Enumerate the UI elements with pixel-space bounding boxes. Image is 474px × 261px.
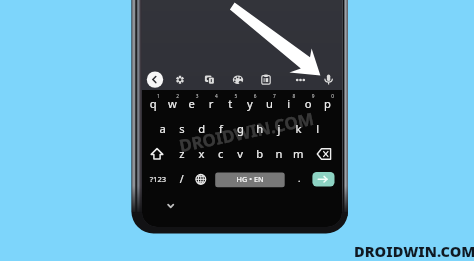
button[interactable]: n	[269, 141, 288, 166]
button[interactable]: r	[201, 92, 220, 117]
button[interactable]: q	[143, 92, 162, 117]
button[interactable]: m	[288, 141, 307, 166]
button[interactable]: Backspace	[311, 141, 339, 166]
button[interactable]: b	[249, 141, 268, 166]
button[interactable]: Enter	[312, 171, 334, 187]
button[interactable]: a	[153, 116, 172, 141]
button[interactable]: p	[317, 92, 336, 117]
button[interactable]: x	[191, 141, 210, 166]
button[interactable]: z	[172, 141, 191, 166]
button[interactable]: j	[269, 116, 288, 141]
button[interactable]: ?123	[145, 166, 171, 191]
button[interactable]: k	[288, 116, 307, 141]
button[interactable]: Hide keyboard	[162, 198, 181, 214]
button[interactable]: d	[191, 116, 210, 141]
button[interactable]: .	[291, 166, 309, 191]
button[interactable]: y	[240, 92, 259, 117]
button[interactable]: g	[230, 116, 249, 141]
button[interactable]: Themes	[231, 72, 244, 87]
button[interactable]: t	[220, 92, 239, 117]
button[interactable]: Settings	[174, 72, 186, 87]
button[interactable]: Change language	[192, 166, 211, 191]
button[interactable]: Shift	[144, 141, 170, 166]
button[interactable]: c	[211, 141, 230, 166]
button[interactable]: o	[298, 92, 317, 117]
button[interactable]: l	[308, 116, 327, 141]
button[interactable]: Voice input	[322, 72, 335, 87]
button[interactable]: Clipboard	[259, 72, 272, 87]
button[interactable]: e	[182, 92, 201, 117]
button[interactable]: s	[172, 116, 191, 141]
button[interactable]: f	[211, 116, 230, 141]
button[interactable]: w	[162, 92, 181, 117]
button[interactable]: Space	[215, 171, 285, 188]
button[interactable]: v	[230, 141, 249, 166]
button[interactable]: Stickers and GIFs	[203, 72, 216, 87]
button[interactable]: /	[173, 166, 191, 191]
button[interactable]: More options	[293, 72, 306, 87]
button[interactable]: i	[279, 92, 298, 117]
button[interactable]: u	[259, 92, 278, 117]
button[interactable]: Back	[146, 71, 162, 87]
button[interactable]: h	[250, 116, 269, 141]
